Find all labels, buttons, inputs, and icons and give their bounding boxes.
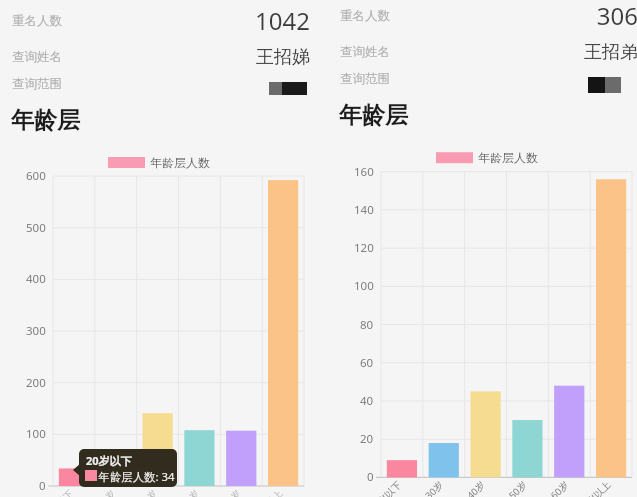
staticText: 306 [328, 0, 637, 32]
staticText: 王招娣 [0, 46, 310, 69]
button[interactable]: 重名人数 [12, 13, 62, 29]
button[interactable]: 查询范围 [269, 82, 307, 95]
button[interactable]: 查询范围 [588, 77, 621, 93]
button[interactable]: 查询姓名 [340, 44, 390, 60]
button[interactable]: 年龄层 [11, 106, 80, 135]
staticText: 年龄层 [11, 106, 80, 135]
button[interactable]: 查询范围 [340, 71, 390, 87]
button[interactable]: 查询范围 [12, 76, 62, 92]
button[interactable]: 年龄层 [339, 101, 408, 130]
staticText: 王招弟 [328, 41, 637, 64]
staticText: 查询范围 [12, 76, 62, 92]
button[interactable]: 查询姓名 [12, 49, 62, 65]
staticText: 重名人数 [340, 8, 390, 24]
button[interactable]: 重名人数 [340, 8, 390, 24]
staticText: 年龄层 [339, 101, 408, 130]
staticText: 查询姓名 [12, 49, 62, 65]
staticText: 重名人数 [12, 13, 62, 29]
staticText: 查询姓名 [340, 44, 390, 60]
staticText: 查询范围 [340, 71, 390, 87]
staticText: 1042 [0, 4, 310, 37]
